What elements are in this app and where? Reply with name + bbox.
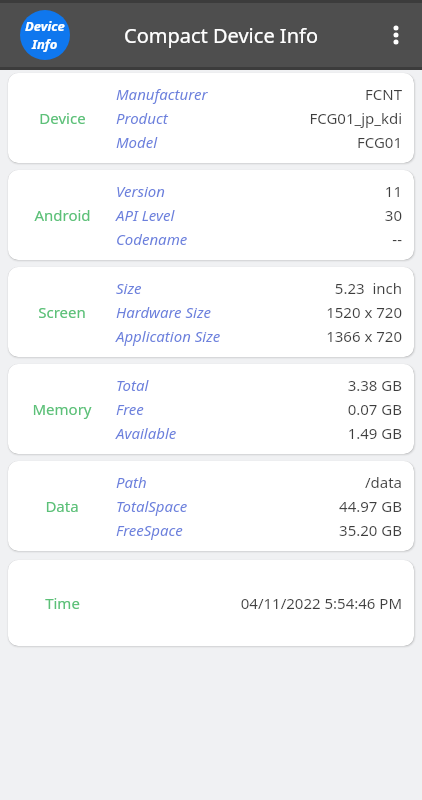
staticText: Manufacturer bbox=[116, 84, 208, 104]
staticText: 1.49 GB bbox=[347, 423, 402, 443]
button[interactable]: Device bbox=[8, 73, 414, 163]
staticText: 04/11/2022 5:54:46 PM bbox=[240, 593, 402, 613]
button[interactable]: Data bbox=[8, 461, 414, 551]
staticText: 35.20 GB bbox=[339, 520, 402, 540]
staticText: Total bbox=[116, 375, 149, 395]
staticText: 3.38 GB bbox=[347, 375, 402, 395]
staticText: 11 bbox=[384, 181, 402, 201]
staticText: TotalSpace bbox=[116, 496, 188, 516]
staticText: /data bbox=[364, 472, 402, 492]
staticText: 1366 x 720 bbox=[326, 326, 402, 346]
staticText: 44.97 GB bbox=[339, 496, 402, 516]
staticText: Android bbox=[34, 205, 91, 225]
staticText: Path bbox=[116, 472, 147, 492]
staticText: Available bbox=[116, 423, 177, 443]
staticText: Device bbox=[25, 17, 65, 35]
staticText: Model bbox=[116, 132, 158, 152]
staticText: Device bbox=[39, 108, 86, 128]
staticText: 5.23 inch bbox=[334, 278, 402, 298]
button[interactable]: More options bbox=[372, 11, 420, 59]
button[interactable]: Memory bbox=[8, 364, 414, 454]
staticText: 0.07 GB bbox=[347, 399, 402, 419]
staticText: Product bbox=[116, 108, 168, 128]
button[interactable]: Device Info bbox=[20, 10, 70, 60]
staticText: Size bbox=[116, 278, 142, 298]
staticText: Time bbox=[45, 593, 80, 613]
staticText: Version bbox=[116, 181, 165, 201]
staticText: Compact Device Info bbox=[124, 22, 318, 49]
staticText: FreeSpace bbox=[116, 520, 183, 540]
staticText: API Level bbox=[116, 205, 175, 225]
staticText: Application Size bbox=[116, 326, 221, 346]
staticText: 30 bbox=[384, 205, 402, 225]
staticText: FCG01_jp_kdi bbox=[309, 108, 402, 128]
staticText: -- bbox=[392, 229, 402, 249]
staticText: Free bbox=[116, 399, 144, 419]
staticText: FCG01 bbox=[356, 132, 402, 152]
staticText: FCNT bbox=[364, 84, 402, 104]
button[interactable]: Screen bbox=[8, 267, 414, 357]
staticText: Codename bbox=[116, 229, 188, 249]
button[interactable]: Time bbox=[8, 560, 414, 646]
button[interactable]: Android bbox=[8, 170, 414, 260]
staticText: Hardware Size bbox=[116, 302, 212, 322]
staticText: Data bbox=[45, 496, 79, 516]
staticText: Screen bbox=[38, 302, 86, 322]
staticText: 1520 x 720 bbox=[326, 302, 402, 322]
staticText: Memory bbox=[32, 399, 92, 419]
staticText: Info bbox=[32, 35, 58, 53]
